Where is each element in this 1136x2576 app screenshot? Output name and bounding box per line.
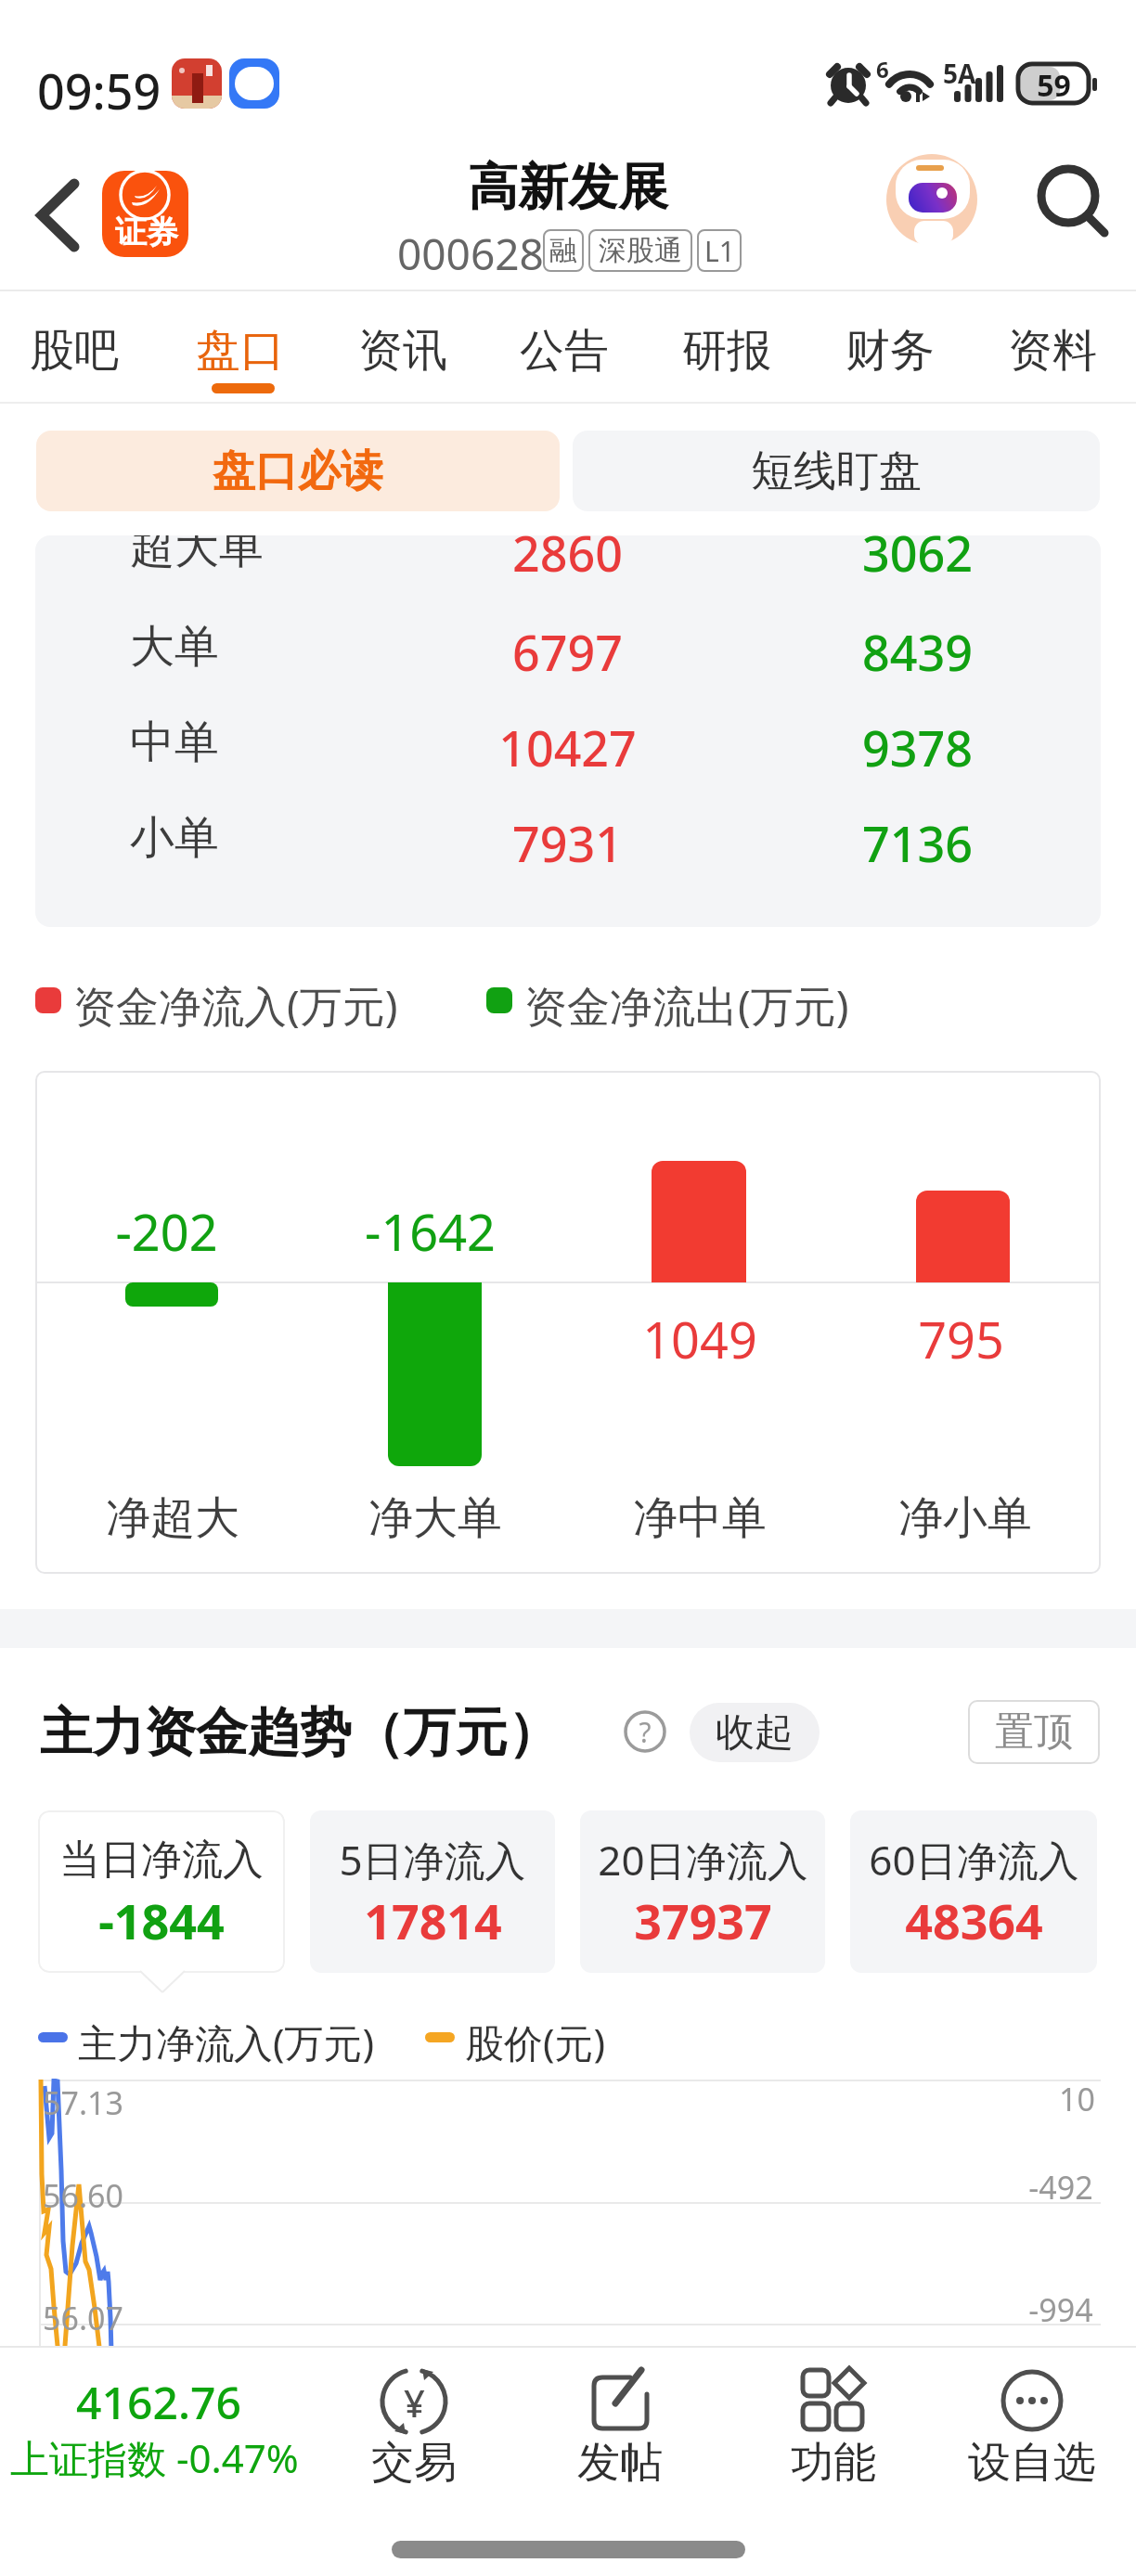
button[interactable]: ¥	[351, 2355, 477, 2485]
staticText: 发帖	[577, 2436, 663, 2484]
staticText: 净小单	[898, 1490, 1032, 1546]
staticText: 公告	[520, 323, 609, 379]
staticText: 财务	[846, 323, 935, 379]
staticText: 主力净流入(万元)	[78, 2016, 375, 2068]
button[interactable]: 短线盯盘	[573, 431, 1100, 511]
staticText: 置顶	[995, 1707, 1073, 1757]
staticText: 3062	[862, 535, 973, 575]
staticText: 10	[1059, 2078, 1095, 2117]
staticText: L1	[704, 232, 735, 270]
staticText: 57.13	[43, 2081, 123, 2124]
staticText: 37937	[634, 1887, 772, 1947]
staticText: 56.07	[43, 2297, 123, 2339]
staticText: 795	[918, 1305, 1004, 1360]
staticText: 6797	[512, 619, 623, 675]
staticText: 20日净流入	[598, 1832, 808, 1887]
staticText: 功能	[791, 2436, 876, 2484]
staticText: 资金净流出(万元)	[524, 976, 849, 1035]
staticText: ¥	[404, 2377, 425, 2426]
staticText: 盘口	[196, 323, 285, 379]
staticText: 主力资金趋势（万元）	[40, 1700, 560, 1766]
staticText: 交易	[371, 2436, 457, 2484]
staticText: 当日净流入	[59, 1835, 264, 1886]
staticText: 股价(元)	[465, 2016, 606, 2068]
button[interactable]: 研报	[664, 306, 798, 399]
staticText: 净大单	[368, 1490, 502, 1546]
button[interactable]: 资讯	[340, 306, 474, 399]
staticText: -202	[115, 1197, 218, 1253]
staticText: 09:59	[37, 58, 161, 123]
staticText: 60日净流入	[869, 1832, 1079, 1887]
staticText: 7931	[512, 810, 623, 866]
staticText: 17814	[364, 1887, 502, 1947]
staticText: 设自选	[968, 2436, 1096, 2484]
button[interactable]: 4162.76	[0, 2357, 297, 2487]
button[interactable]: 当日净流入	[38, 1810, 285, 1973]
staticText: 高新发展	[468, 156, 668, 219]
staticText: 资料	[1008, 323, 1097, 379]
staticText: ?	[639, 1713, 652, 1750]
staticText: 融	[549, 233, 577, 268]
button[interactable]: 20日净流入	[580, 1810, 825, 1973]
staticText: 5日净流入	[339, 1832, 526, 1887]
button[interactable]: 5日净流入	[310, 1810, 555, 1973]
staticText: 超大单	[130, 535, 264, 575]
staticText: -1642	[365, 1197, 496, 1253]
staticText: 研报	[682, 323, 771, 379]
staticText: 短线盯盘	[751, 444, 922, 498]
button[interactable]: 设自选	[958, 2355, 1106, 2485]
button[interactable]: 功能	[770, 2355, 897, 2485]
button[interactable]: 证券	[102, 171, 188, 257]
staticText: 6	[876, 54, 889, 84]
button[interactable]: 发帖	[557, 2355, 683, 2485]
staticText: 9378	[862, 715, 973, 770]
staticText: 上证指数 -0.47%	[10, 2431, 299, 2484]
button[interactable]	[37, 176, 84, 260]
staticText: 10427	[498, 715, 637, 770]
staticText: -1844	[98, 1887, 225, 1947]
staticText: -492	[1028, 2166, 1093, 2205]
staticText: 4162.76	[76, 2372, 241, 2424]
staticText: 证券	[115, 213, 178, 252]
staticText: 盘口必读	[213, 444, 383, 498]
button[interactable]: 盘口必读	[36, 431, 560, 511]
button[interactable]: 60日净流入	[850, 1810, 1097, 1973]
staticText: 收起	[716, 1708, 794, 1758]
staticText: 000628	[397, 225, 544, 283]
staticText: 59	[1037, 65, 1071, 102]
staticText: 中单	[130, 715, 219, 770]
staticText: 8439	[862, 619, 973, 675]
button[interactable]: 股吧	[11, 306, 146, 399]
staticText: -994	[1028, 2288, 1093, 2327]
staticText: 股吧	[30, 323, 119, 379]
staticText: 7136	[862, 810, 973, 866]
button[interactable]: 财务	[827, 306, 962, 399]
staticText: 5A	[943, 56, 976, 91]
button[interactable]: 收起	[690, 1703, 820, 1762]
button[interactable]	[886, 154, 977, 245]
staticText: 资讯	[358, 323, 447, 379]
button[interactable]: 置顶	[968, 1700, 1100, 1764]
staticText: 2860	[512, 535, 623, 575]
staticText: 深股通	[599, 233, 682, 268]
button[interactable]: 公告	[501, 306, 636, 399]
button[interactable]: 盘口	[177, 306, 312, 399]
staticText: 56.60	[43, 2174, 123, 2217]
staticText: 净中单	[633, 1490, 767, 1546]
staticText: 大单	[130, 619, 219, 675]
staticText: 资金净流入(万元)	[73, 976, 398, 1035]
staticText: 48364	[905, 1887, 1043, 1947]
button[interactable]	[1034, 161, 1112, 239]
button[interactable]: 资料	[989, 306, 1124, 399]
staticText: 净超大	[106, 1490, 239, 1546]
staticText: 小单	[130, 810, 219, 866]
staticText: 1049	[642, 1305, 757, 1360]
